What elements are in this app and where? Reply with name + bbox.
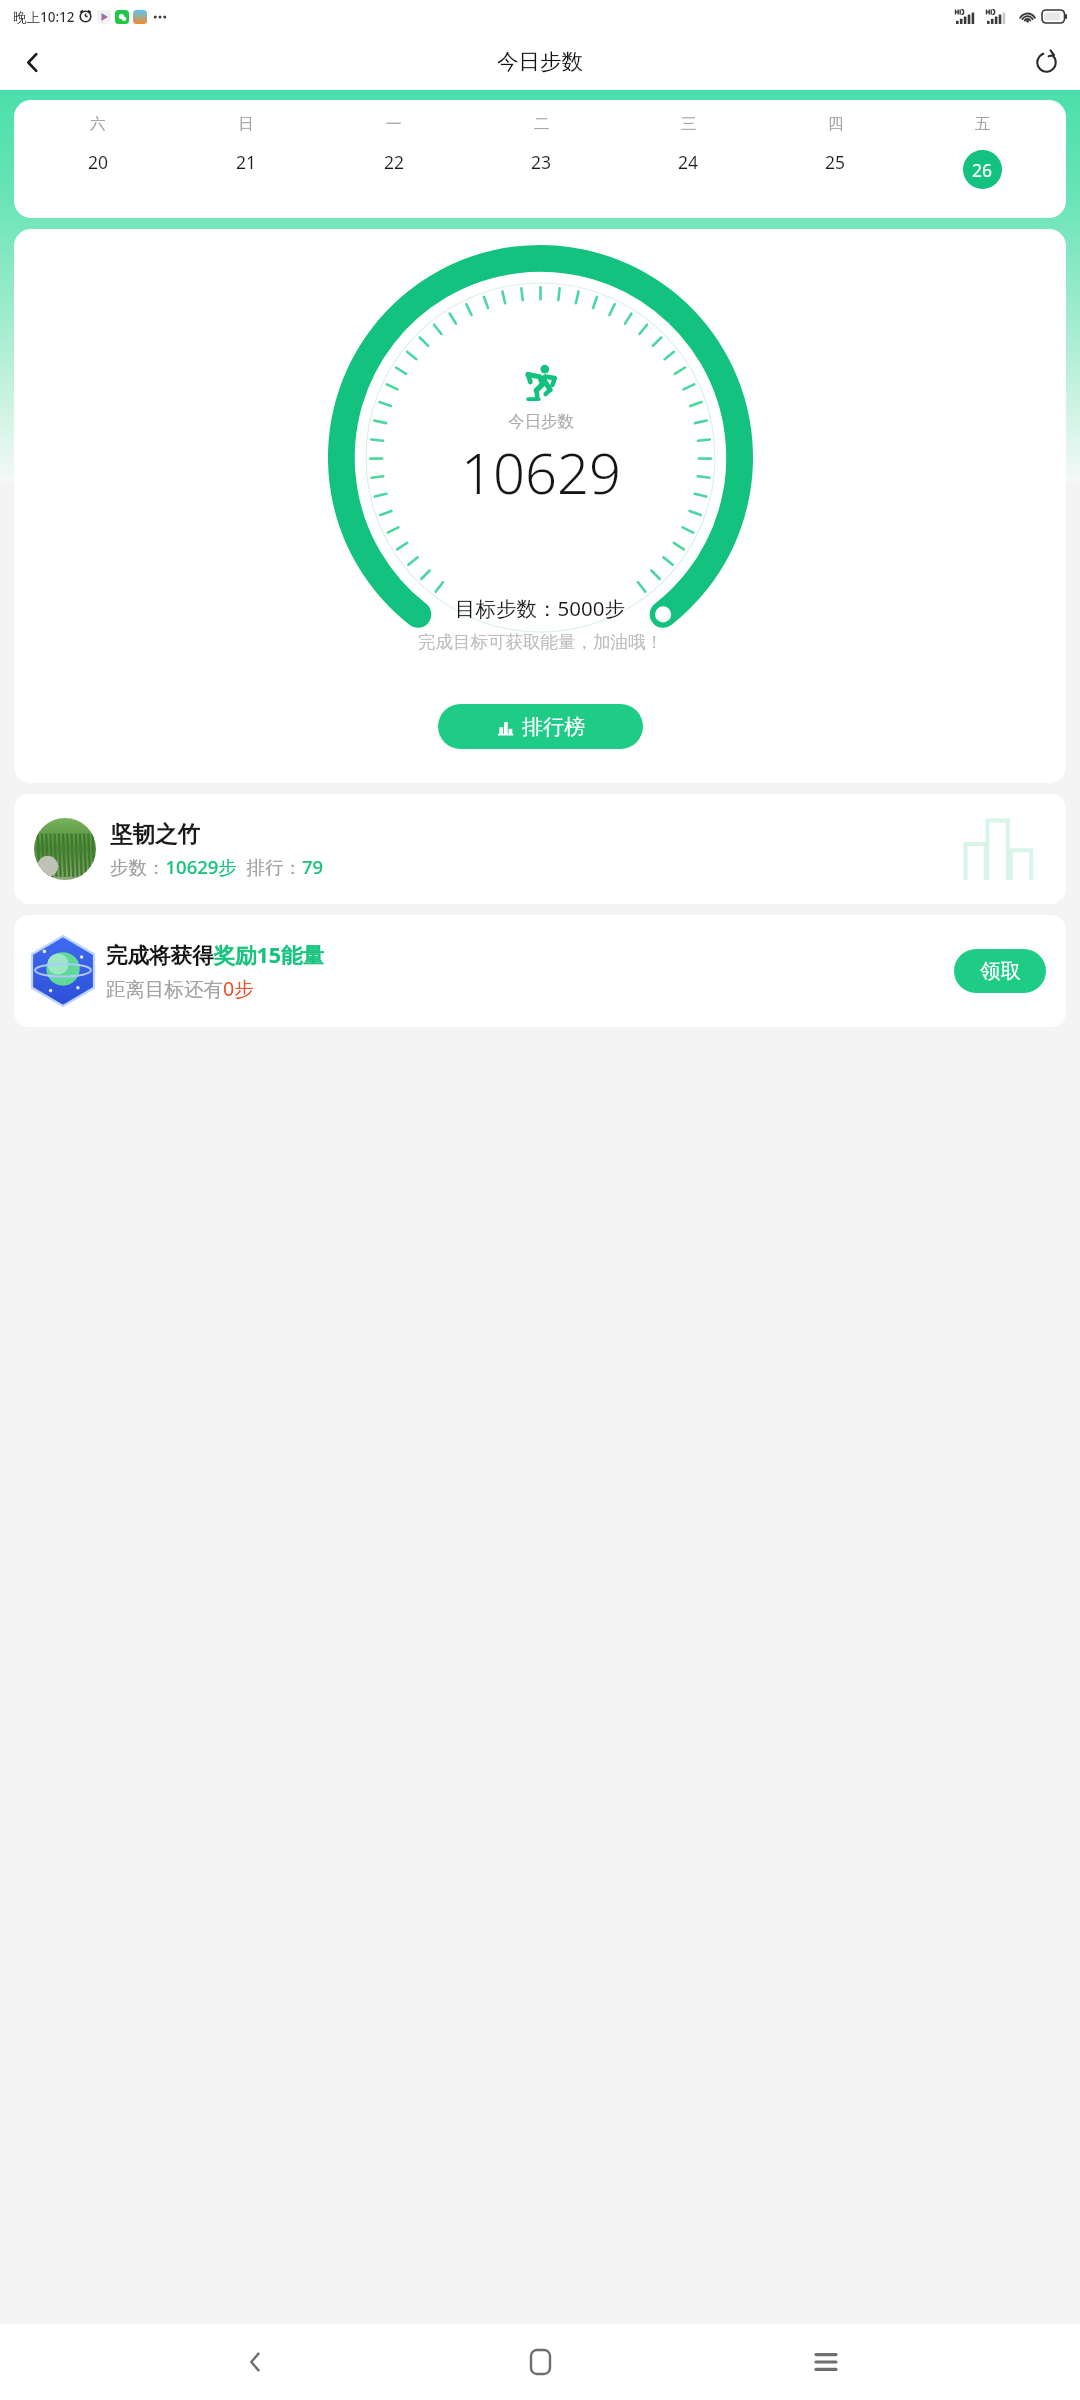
staticText: 日 xyxy=(238,114,254,134)
button[interactable]: 排行榜 xyxy=(438,704,643,749)
staticText: 一 xyxy=(386,114,402,134)
staticText: 晚上10:12 xyxy=(13,8,75,26)
staticText: 步数：10629步 排行：79 xyxy=(110,854,324,879)
staticText: 坚韧之竹 xyxy=(110,820,200,848)
staticText: 24 xyxy=(678,150,699,174)
button[interactable]: 领取 xyxy=(954,949,1046,993)
button[interactable]: 最近任务 xyxy=(795,2331,857,2393)
staticText: 今日步数 xyxy=(497,48,583,75)
staticText: 22 xyxy=(384,150,405,174)
staticText: 领取 xyxy=(980,958,1021,984)
staticText: 26 xyxy=(972,158,993,182)
button[interactable]: 主屏幕 xyxy=(509,2331,571,2393)
staticText: 二 xyxy=(534,114,550,134)
staticText: 三 xyxy=(681,114,697,134)
button[interactable]: 坚韧之竹 xyxy=(14,794,1066,904)
staticText: 25 xyxy=(825,150,846,174)
button[interactable]: 返回 xyxy=(224,2331,286,2393)
staticText: 10629 xyxy=(461,434,621,510)
staticText: 目标步数：5000步 xyxy=(455,594,625,622)
staticText: 五 xyxy=(975,114,991,134)
staticText: 六 xyxy=(90,114,106,134)
staticText: 20 xyxy=(88,150,109,174)
staticText: 排行榜 xyxy=(522,714,585,740)
staticText: 完成目标可获取能量，加油哦！ xyxy=(418,631,663,653)
button[interactable]: 分享 xyxy=(1020,36,1072,88)
staticText: 四 xyxy=(828,114,844,134)
staticText: 完成将获得奖励15能量 xyxy=(106,940,325,969)
button[interactable]: 六 xyxy=(14,100,1066,218)
staticText: 距离目标还有0步 xyxy=(106,975,254,1002)
staticText: 23 xyxy=(531,150,552,174)
button[interactable]: 返回 xyxy=(6,36,58,88)
staticText: 今日步数 xyxy=(508,411,574,432)
staticText: 21 xyxy=(236,150,257,174)
